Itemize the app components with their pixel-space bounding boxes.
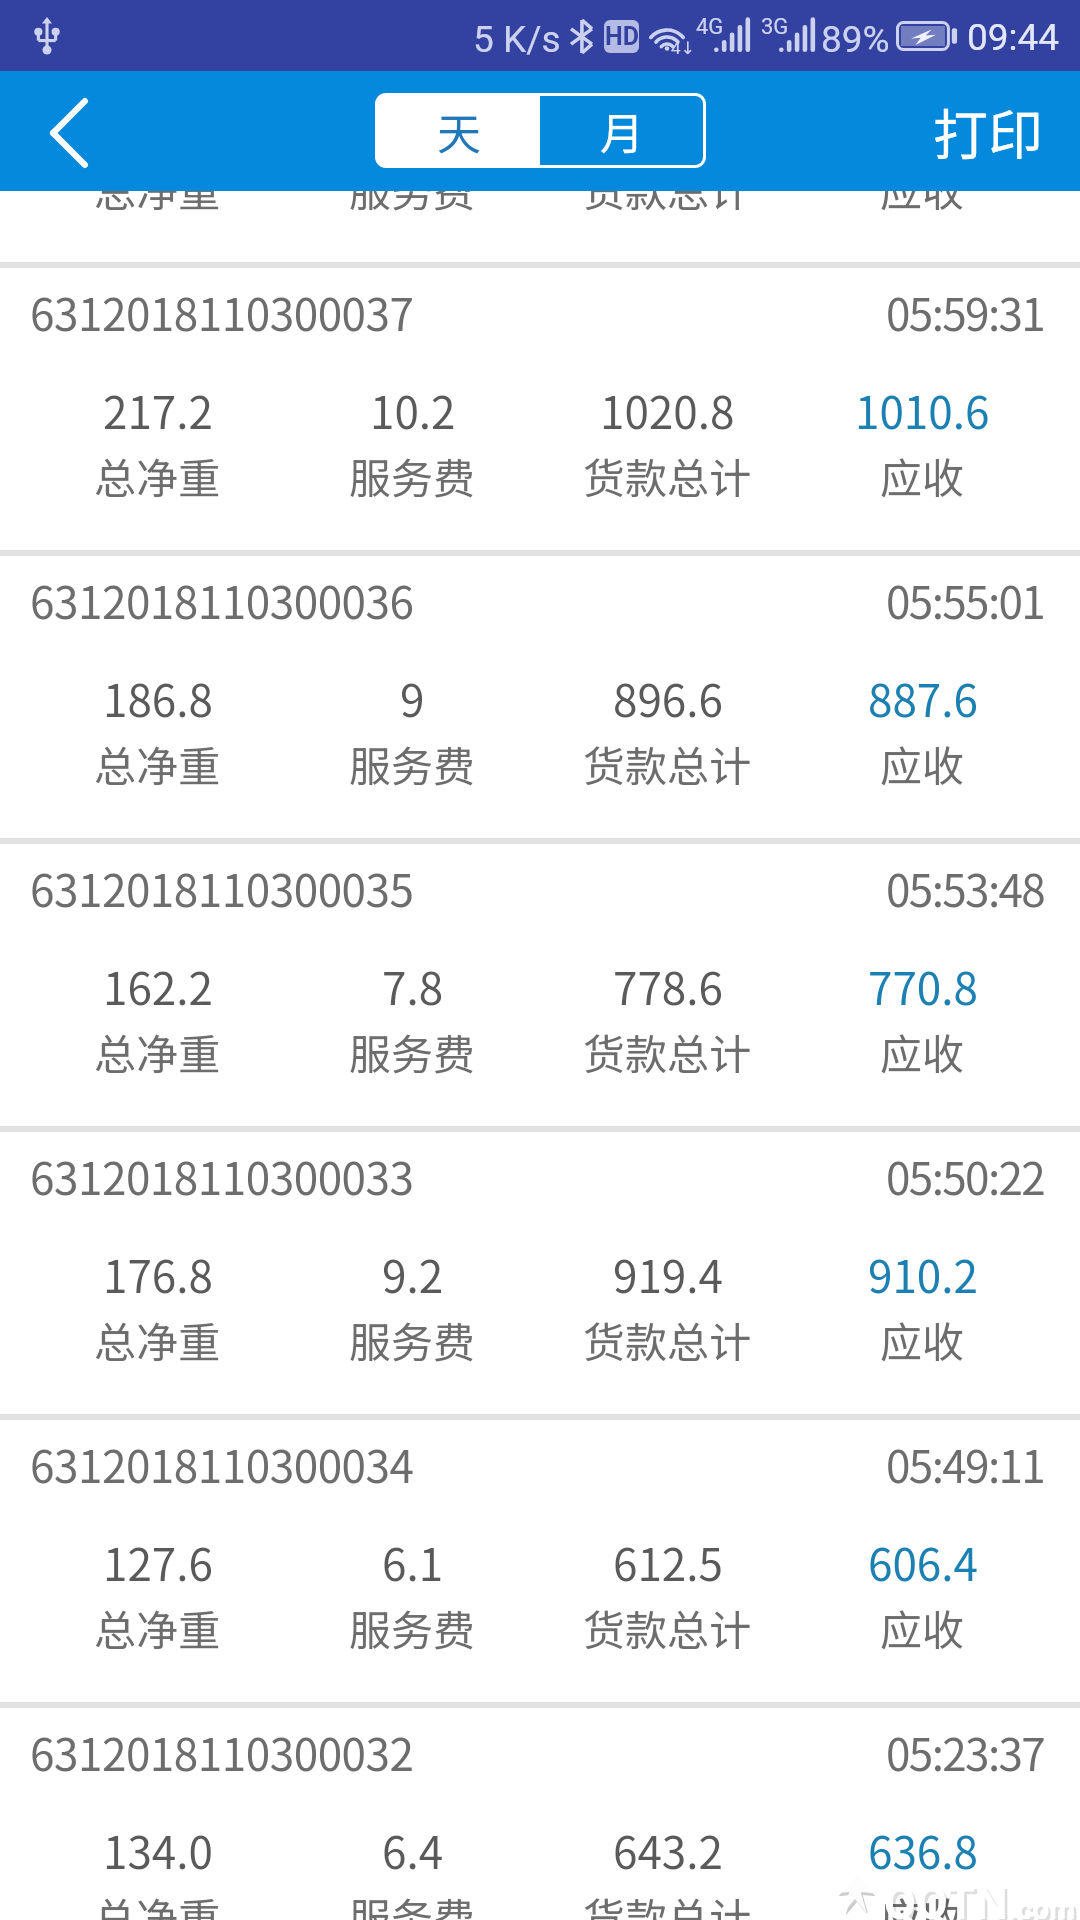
staticText: 3G [761,14,789,40]
staticText: 7.8 [382,954,444,1018]
staticText: 896.6 [613,666,723,730]
staticText: 应收 [880,1597,965,1658]
button[interactable]: 6312018110300036 [0,556,1080,838]
staticText: 770.8 [868,954,978,1018]
staticText: 643.2 [613,1818,723,1882]
staticText: 89% [821,18,890,61]
staticText: 09:44 [967,16,1060,59]
staticText: 05:59:31 [886,280,1045,344]
staticText: QQTN [884,1876,1008,1920]
staticText: 货款总计 [583,1597,752,1658]
staticText: 货款总计 [583,1885,752,1920]
staticText: 134.0 [103,1818,213,1882]
staticText: 612.5 [613,1530,723,1594]
staticText: 05:23:37 [886,1720,1045,1784]
button[interactable]: 6312018110300034 [0,1420,1080,1702]
staticText: 总净重 [94,1597,221,1658]
staticText: QQTN [887,1879,1011,1920]
staticText: 应收 [880,733,965,794]
staticText: 127.6 [103,1530,213,1594]
staticText: 应收 [880,1885,965,1920]
staticText: 货款总计 [583,1021,752,1082]
staticText: 05:53:48 [886,856,1045,920]
staticText: 货款总计 [583,1309,752,1370]
button[interactable]: 6312018110300035 [0,844,1080,1126]
other: USB connected [35,17,59,55]
staticText: 服务费 [349,1021,476,1082]
staticText: 606.4 [868,1530,978,1594]
staticText: 162.2 [103,954,213,1018]
staticText: 服务费 [349,445,476,506]
button[interactable]: 月 [540,96,703,165]
staticText: HD [605,22,639,51]
staticText: 05:55:01 [886,568,1045,632]
button[interactable]: 6312018110300037 [0,268,1080,550]
staticText: 6.4 [382,1818,444,1882]
staticText: 应收 [880,445,965,506]
staticText: 636.8 [868,1818,978,1882]
staticText: 176.8 [103,1242,213,1306]
staticText: 6312018110300032 [30,1720,414,1784]
staticText: 9 [400,666,425,730]
staticText: .com [1008,1891,1076,1920]
staticText: 05:50:22 [886,1144,1045,1208]
staticText: 6312018110300036 [30,568,414,632]
staticText: 服务费 [349,1309,476,1370]
staticText: 服务费 [349,191,476,219]
staticText: 1010.6 [855,378,990,442]
staticText: 05:49:11 [886,1432,1045,1496]
staticText: 服务费 [349,1885,476,1920]
staticText: 4↓ [671,38,695,58]
staticText: 总净重 [94,1309,221,1370]
staticText: 应收 [880,1309,965,1370]
staticText: 货款总计 [583,191,752,219]
staticText: 应收 [880,191,965,219]
staticText: 服务费 [349,1597,476,1658]
button[interactable]: 打印 [897,71,1080,191]
staticText: 9.2 [382,1242,444,1306]
staticText: 总净重 [94,733,221,794]
staticText: 6312018110300034 [30,1432,414,1496]
staticText: 6312018110300035 [30,856,414,920]
staticText: 919.4 [613,1242,723,1306]
staticText: 1020.8 [600,378,735,442]
staticText: 总净重 [94,445,221,506]
staticText: 887.6 [868,666,978,730]
staticText: 6312018110300033 [30,1144,414,1208]
staticText: 4G [696,14,724,40]
button[interactable]: 天 [378,96,540,165]
staticText: 6.1 [382,1530,444,1594]
staticText: 6312018110300037 [30,280,414,344]
staticText: 217.2 [103,378,213,442]
staticText: 月 [600,99,644,163]
staticText: 应收 [880,1021,965,1082]
staticText: 778.6 [613,954,723,1018]
button[interactable]: 6312018110300033 [0,1132,1080,1414]
staticText: 打印 [933,91,1044,171]
staticText: 服务费 [349,733,476,794]
staticText: 货款总计 [583,445,752,506]
staticText: 5 K/s [473,18,561,61]
staticText: .com [1011,1894,1079,1920]
staticText: 总净重 [94,1885,221,1920]
staticText: 天 [437,99,481,163]
staticText: 10.2 [370,378,456,442]
staticText: 总净重 [94,191,221,219]
staticText: 总净重 [94,1021,221,1082]
staticText: 货款总计 [583,733,752,794]
button[interactable]: 6312018110300032 [0,1708,1080,1920]
staticText: 910.2 [868,1242,978,1306]
button[interactable]: Back [0,71,130,191]
staticText: 186.8 [103,666,213,730]
